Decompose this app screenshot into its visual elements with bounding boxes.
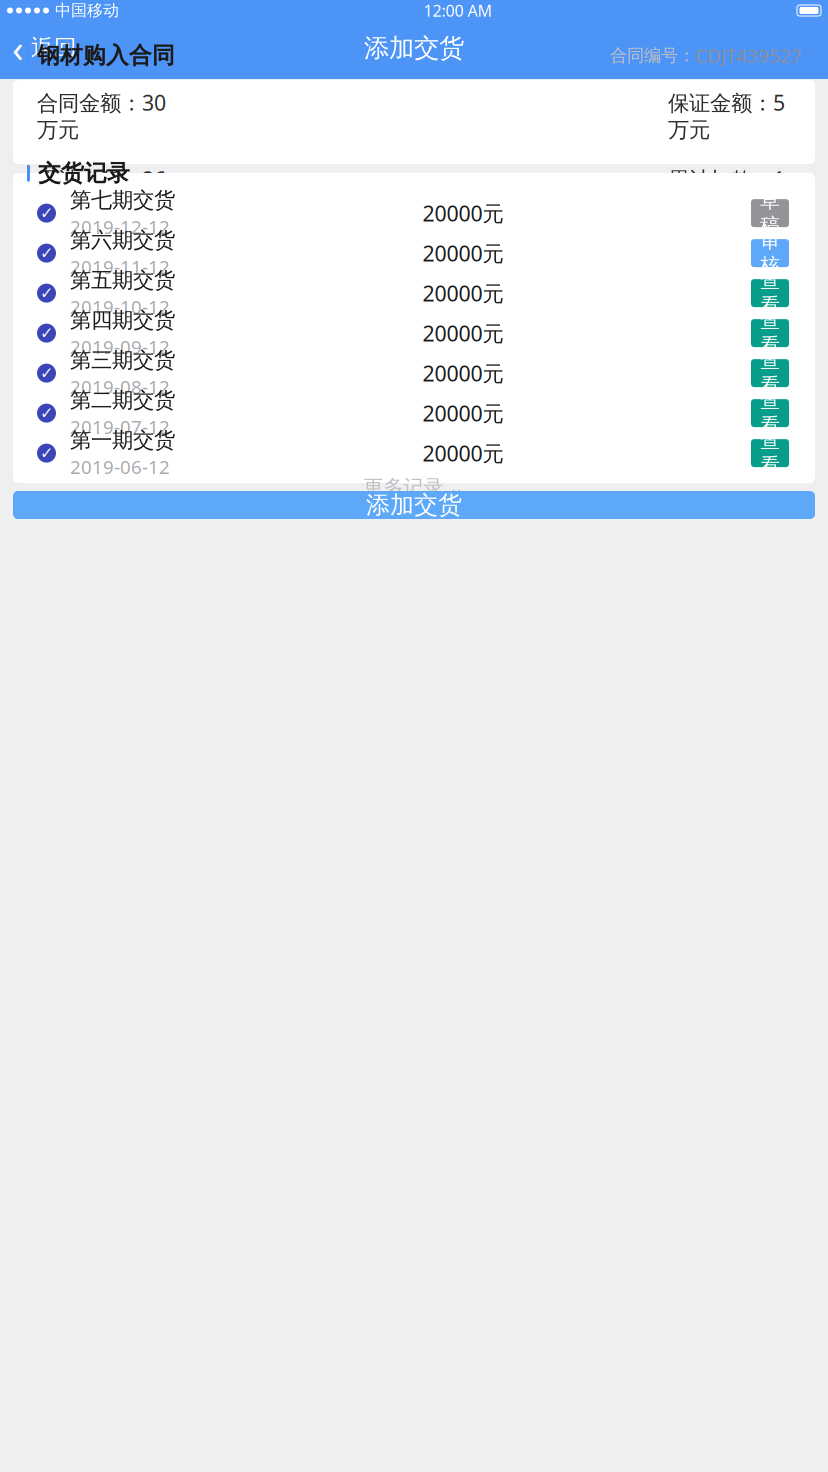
- staticText: 2019-07-12: [70, 414, 170, 439]
- button[interactable]: ✓: [13, 193, 815, 233]
- staticText: 2019-11-12: [70, 254, 170, 279]
- staticText: 20000元: [422, 239, 503, 267]
- staticText: 2019-08-12: [70, 374, 170, 399]
- staticText: 查看: [760, 429, 780, 478]
- button[interactable]: 更多记录: [13, 473, 815, 502]
- staticText: 20000元: [422, 359, 503, 387]
- staticText: 20000元: [422, 199, 503, 227]
- staticText: 20000元: [422, 279, 503, 307]
- staticText: 中国移动: [55, 1, 119, 20]
- staticText: 查看: [760, 309, 780, 358]
- button[interactable]: ✓: [13, 233, 815, 273]
- staticText: 2019-09-12: [70, 334, 170, 359]
- staticText: 20000元: [422, 439, 503, 467]
- staticText: ‹: [12, 23, 24, 73]
- staticText: 20000元: [422, 399, 503, 427]
- staticText: 返回: [31, 34, 77, 62]
- staticText: 20000元: [422, 319, 503, 347]
- staticText: 累计扣款：1万元: [668, 165, 785, 219]
- button[interactable]: ‹: [4, 17, 85, 79]
- staticText: 添加交货: [364, 32, 464, 63]
- button[interactable]: ✓: [13, 353, 815, 393]
- staticText: 审核: [760, 229, 780, 278]
- staticText: 草稿: [760, 189, 780, 238]
- staticText: 第一期交货: [70, 427, 175, 453]
- button[interactable]: 添加交货: [13, 491, 815, 519]
- staticText: 查看: [760, 349, 780, 398]
- staticText: 2019-10-12: [70, 294, 170, 319]
- staticText: 合同编号：: [610, 45, 695, 66]
- staticText: ✓: [40, 204, 53, 222]
- staticText: 第六期交货: [70, 227, 175, 253]
- staticText: 2019-12-12: [70, 214, 170, 239]
- staticText: 查看: [760, 269, 780, 318]
- staticText: 第四期交货: [70, 307, 175, 333]
- staticText: 第三期交货: [70, 347, 175, 373]
- staticText: ✓: [40, 364, 53, 382]
- staticText: 更多记录: [363, 475, 443, 500]
- staticText: ✓: [40, 444, 53, 462]
- staticText: 12:00 AM: [423, 0, 492, 21]
- staticText: CDJT439527: [695, 43, 802, 68]
- staticText: ⌄: [448, 477, 464, 498]
- staticText: 2019-06-12: [70, 454, 170, 479]
- staticText: ✓: [40, 404, 53, 422]
- staticText: 第七期交货: [70, 187, 175, 213]
- staticText: 第五期交货: [70, 267, 175, 293]
- staticText: 交货记录: [38, 159, 130, 187]
- button[interactable]: ✓: [13, 393, 815, 433]
- button[interactable]: ✓: [13, 433, 815, 473]
- staticText: 查看: [760, 389, 780, 438]
- staticText: ✓: [40, 244, 53, 262]
- staticText: 合同金额：30万元: [37, 88, 166, 143]
- button[interactable]: ✓: [13, 313, 815, 353]
- staticText: 添加交货: [366, 490, 462, 520]
- staticText: ✓: [40, 284, 53, 302]
- staticText: 钢材购入合同: [37, 41, 175, 69]
- staticText: 第二期交货: [70, 387, 175, 413]
- button[interactable]: ✓: [13, 273, 815, 313]
- staticText: ✓: [40, 324, 53, 342]
- staticText: 保证金额：5万元: [668, 88, 785, 143]
- staticText: 累计交货：26万元: [37, 165, 166, 219]
